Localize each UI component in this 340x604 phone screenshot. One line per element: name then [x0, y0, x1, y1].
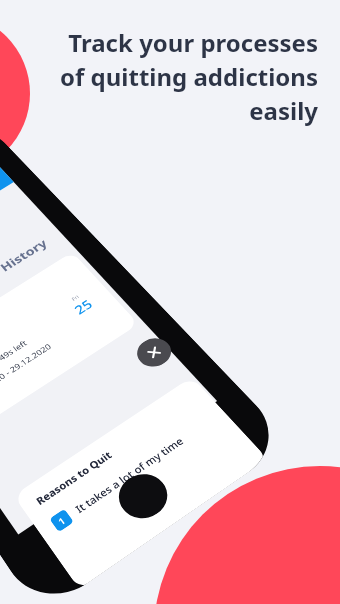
- button[interactable]: Close: [131, 333, 178, 372]
- staticText: 2d 13h 58m 49s left: [0, 338, 29, 391]
- staticText: 26.12.2020 - 29.12.2020: [0, 341, 53, 404]
- staticText: Reasons to Quit: [33, 448, 115, 508]
- staticText: Track your processes of quitting addicti…: [20, 26, 318, 127]
- staticText: History: [0, 236, 50, 274]
- staticText: 25: [70, 296, 96, 318]
- staticText: 1: [55, 513, 68, 527]
- staticText: It takes a lot of my time: [72, 434, 187, 516]
- staticText: Fri: [70, 293, 81, 302]
